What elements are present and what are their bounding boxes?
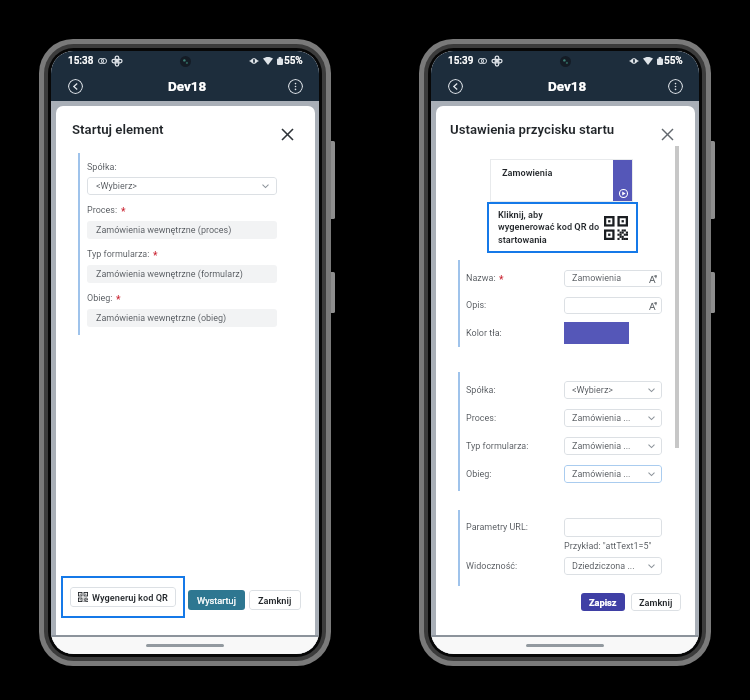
staticText: 15:39 xyxy=(448,55,474,67)
button[interactable]: More options xyxy=(288,79,303,94)
staticText: Typ formularza: xyxy=(87,249,150,260)
button[interactable]: Zamówienia ... xyxy=(564,409,662,427)
button[interactable]: Close xyxy=(658,125,676,143)
staticText: <Wybierz> xyxy=(96,181,138,192)
staticText: Zamowienia xyxy=(502,167,553,178)
button[interactable]: Zamówienia wewnętrzne (proces) xyxy=(87,221,277,239)
button[interactable]: Zamknij xyxy=(631,593,681,611)
staticText: Widoczność: xyxy=(466,561,518,572)
button[interactable]: Zapisz xyxy=(581,593,625,611)
staticText: Nazwa: xyxy=(466,273,496,284)
staticText: Zamówienia ... xyxy=(572,441,631,452)
staticText: * xyxy=(499,274,504,286)
staticText: Obieg: xyxy=(466,469,492,480)
button[interactable] xyxy=(564,518,662,537)
button[interactable]: Back xyxy=(448,79,463,94)
button[interactable]: <Wybierz> xyxy=(564,381,662,399)
staticText: Wystartuj xyxy=(197,595,236,606)
staticText: Parametry URL: xyxy=(466,522,528,533)
staticText: 15:38 xyxy=(68,55,94,67)
staticText: Spółka: xyxy=(466,385,496,396)
staticText: 55% xyxy=(284,55,303,67)
button[interactable]: Zamowienia xyxy=(564,270,662,287)
staticText: Startuj element xyxy=(72,122,164,137)
staticText: Dev18 xyxy=(548,78,587,94)
button[interactable]: Zamknij xyxy=(249,590,301,610)
staticText: Opis: xyxy=(466,300,487,311)
staticText: Spółka: xyxy=(87,162,117,173)
staticText: Zamknij xyxy=(258,595,292,606)
staticText: 55% xyxy=(664,55,683,67)
button[interactable]: Zamowienia xyxy=(490,159,633,202)
staticText: Kliknij, aby wygenerować kod QR do start… xyxy=(498,209,600,246)
staticText: Dziedziczona ... xyxy=(572,561,635,572)
button[interactable]: Wystartuj xyxy=(188,590,245,610)
button[interactable]: Close xyxy=(278,125,296,143)
button[interactable]: Dziedziczona ... xyxy=(564,557,662,575)
staticText: Zamówienia wewnętrzne (formularz) xyxy=(96,269,243,280)
staticText: Kolor tła: xyxy=(466,328,502,339)
staticText: <Wybierz> xyxy=(572,385,614,396)
staticText: Zamówienia ... xyxy=(572,413,631,424)
staticText: Dev18 xyxy=(168,78,207,94)
staticText: Zamowienia xyxy=(572,273,622,284)
staticText: Zamówienia wewnętrzne (obieg) xyxy=(96,313,227,324)
staticText: * xyxy=(153,250,158,262)
staticText: Ustawienia przycisku startu xyxy=(450,122,615,137)
staticText: Obieg: xyxy=(87,293,113,304)
staticText: Proces: xyxy=(87,205,118,216)
staticText: Zamówienia wewnętrzne (proces) xyxy=(96,225,232,236)
button[interactable]: <Wybierz> xyxy=(87,177,277,195)
button[interactable] xyxy=(564,297,662,314)
staticText: Przykład: "attText1=5" xyxy=(564,541,652,552)
staticText: Typ formularza: xyxy=(466,441,529,452)
staticText: * xyxy=(116,294,121,306)
button[interactable]: Zamówienia wewnętrzne (formularz) xyxy=(87,265,277,283)
staticText: Zapisz xyxy=(589,597,617,608)
button[interactable]: Kliknij, aby wygenerować kod QR do start… xyxy=(487,202,638,253)
staticText: Proces: xyxy=(466,413,497,424)
button[interactable]: Zamówienia wewnętrzne (obieg) xyxy=(87,309,277,327)
button[interactable]: Zamówienia ... xyxy=(564,465,662,483)
button[interactable]: More options xyxy=(668,79,683,94)
staticText: Zamknij xyxy=(639,597,673,608)
button[interactable]: Zamówienia ... xyxy=(564,437,662,455)
staticText: * xyxy=(121,206,126,218)
staticText: Zamówienia ... xyxy=(572,469,631,480)
button[interactable]: Back xyxy=(68,79,83,94)
staticText: Wygeneruj kod QR xyxy=(92,592,168,603)
button[interactable]: Wygeneruj kod QR xyxy=(61,576,185,618)
